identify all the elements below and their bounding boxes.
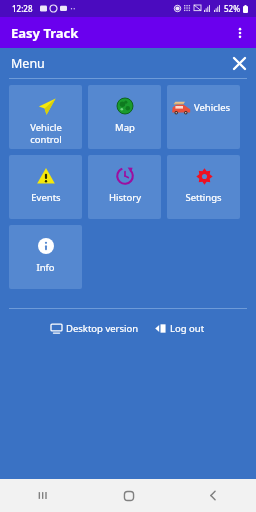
staticText: 12:28 <box>12 3 33 14</box>
button[interactable]: Desktop version <box>47 319 143 338</box>
staticText: Menu <box>11 55 45 72</box>
button[interactable]: History <box>88 155 161 219</box>
staticText: Vehicles <box>194 101 231 114</box>
button[interactable]: Events <box>9 155 82 219</box>
staticText: Settings <box>185 191 222 204</box>
staticText: Info <box>36 261 55 274</box>
button[interactable]: Home <box>86 479 171 512</box>
staticText: Events <box>31 191 61 204</box>
button[interactable]: More options <box>224 17 256 48</box>
button[interactable]: Vehicles <box>167 85 240 149</box>
staticText: Map <box>115 121 135 134</box>
button[interactable]: Close menu <box>226 50 252 76</box>
staticText: 52% <box>224 3 240 14</box>
staticText: Vehicle control <box>30 121 62 146</box>
staticText: History <box>109 191 141 204</box>
staticText: Desktop version <box>66 322 139 335</box>
button[interactable]: Map <box>88 85 161 149</box>
staticText: Log out <box>170 322 205 335</box>
button[interactable]: Back <box>171 479 256 512</box>
staticText: Easy Track <box>11 24 79 42</box>
button[interactable]: Log out <box>151 319 209 338</box>
button[interactable]: Recent apps <box>0 479 86 512</box>
button[interactable]: Settings <box>167 155 240 219</box>
button[interactable]: Vehicle control <box>9 85 82 149</box>
button[interactable]: Info <box>9 225 82 289</box>
